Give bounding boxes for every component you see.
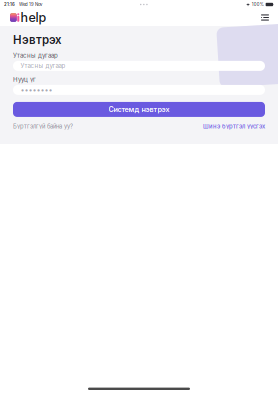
staticText: Утасны дугаар (20, 62, 65, 70)
staticText: Нууц үг (13, 76, 36, 83)
staticText: Wed 19 Nov (19, 2, 42, 7)
button[interactable]: Menu (259, 11, 271, 24)
staticText: 100% (252, 2, 264, 7)
staticText: Утасны дугаар (13, 52, 58, 59)
staticText: 21:16 (4, 2, 15, 7)
staticText: •••••••• (20, 86, 52, 94)
staticText: Шинэ бүртгэл үүсгэх (203, 123, 265, 130)
button[interactable]: Шинэ бүртгэл үүсгэх (203, 123, 265, 130)
button[interactable]: Системд нэвтрэх (13, 102, 265, 117)
staticText: help (21, 10, 47, 25)
button[interactable]: Бүртгэлгүй байна уу? (13, 123, 73, 130)
staticText: Нэвтрэх (13, 33, 62, 47)
staticText: Системд нэвтрэх (108, 105, 169, 114)
staticText: Бүртгэлгүй байна уу? (13, 123, 73, 130)
